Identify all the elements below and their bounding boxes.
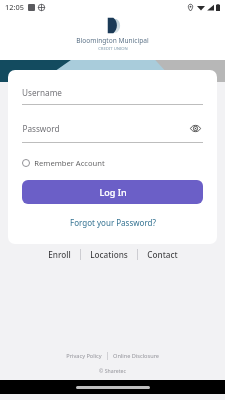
button[interactable]: Show password	[187, 120, 203, 136]
button[interactable]: Online Disclosure	[108, 350, 164, 362]
button[interactable]: Privacy Policy	[61, 350, 107, 362]
button[interactable]: Password	[22, 120, 203, 143]
button[interactable]: Log In	[22, 180, 203, 204]
button[interactable]: Remember Account	[22, 157, 203, 169]
staticText: Privacy Policy	[66, 352, 102, 360]
staticText: Online Disclosure	[113, 352, 159, 360]
staticText: Log In	[99, 186, 127, 198]
staticText: Contact	[147, 249, 178, 260]
staticText: Password	[22, 123, 60, 134]
button[interactable]: Forgot your Password?	[22, 214, 203, 231]
staticText: Forgot your Password?	[70, 217, 156, 228]
button[interactable]: Locations	[81, 245, 137, 264]
staticText: Username	[22, 87, 62, 98]
staticText: Enroll	[48, 249, 71, 260]
button[interactable]: Username	[22, 87, 203, 105]
staticText: Remember Account	[34, 158, 105, 168]
staticText: 12:05	[5, 2, 24, 12]
button[interactable]: Enroll	[39, 245, 80, 264]
staticText: Locations	[90, 249, 128, 260]
staticText: Bloomington Municipal	[76, 36, 149, 45]
staticText: CREDIT UNION	[98, 46, 128, 52]
button[interactable]: Contact	[138, 245, 187, 264]
staticText: © Sharetec	[99, 367, 126, 374]
